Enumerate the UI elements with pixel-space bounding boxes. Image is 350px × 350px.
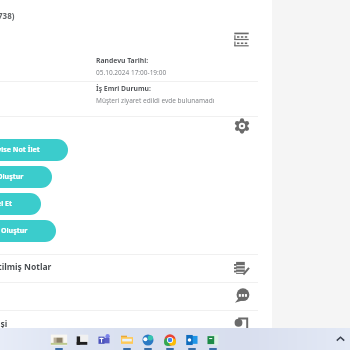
button[interactable]: Show hidden icons [335,334,346,345]
button[interactable]: Microsoft Edge [138,331,158,350]
staticText: 05.10.2024 17:00-19:00 [96,68,167,77]
button[interactable]: Settings [234,118,250,134]
staticText: Oluştur [1,226,28,236]
button[interactable]: el Et [0,193,41,215]
staticText: Servise Not İlet [0,145,40,155]
staticText: 738) [0,10,15,21]
button[interactable]: Microsoft Teams [94,331,114,350]
button[interactable]: Oluştur [0,166,52,188]
staticText: Müşteri ziyaret edildi evde bulunamadı [96,96,215,105]
staticText: İş Emri Durumu: [96,84,151,93]
staticText: Oluştur [0,172,24,182]
button[interactable]: Excel [203,331,223,350]
staticText: el Et [0,199,13,209]
button[interactable]: Windows app [72,331,92,350]
button[interactable]: Oluştur [0,220,56,242]
staticText: tilmiş Notlar [0,261,52,273]
button[interactable]: Google Chrome [160,331,180,350]
button[interactable]: Outlook [182,331,202,350]
button[interactable]: Chat [234,316,249,331]
staticText: işi [0,318,8,330]
button[interactable]: Table view [234,32,249,47]
button[interactable]: File Explorer [117,331,137,350]
button[interactable]: Send SMS [234,288,250,304]
button[interactable]: Photos [49,331,69,350]
staticText: Randevu Tarihi: [96,56,149,65]
button[interactable]: Servise Not İlet [0,139,68,161]
button[interactable]: Edit notes [234,261,249,276]
